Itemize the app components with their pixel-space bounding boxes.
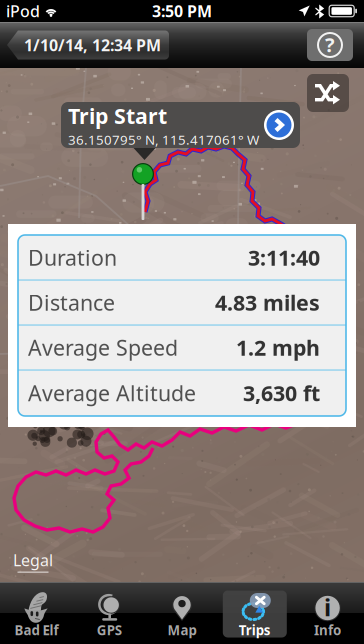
staticText: Trips	[239, 621, 271, 639]
staticText: 3:11:40	[248, 243, 320, 272]
staticText: Distance	[28, 288, 115, 317]
button[interactable]: Bad Elf	[0, 586, 73, 642]
staticText: ?	[325, 31, 335, 58]
button[interactable]: Trip Start	[61, 102, 300, 148]
button[interactable]: 1/10/14, 12:34 PM	[7, 30, 169, 59]
staticText: i	[324, 591, 331, 623]
staticText: Map	[167, 621, 196, 639]
staticText: 1.2 mph	[236, 333, 320, 362]
staticText: Average Speed	[28, 333, 178, 362]
button[interactable]: Map	[146, 586, 218, 642]
button[interactable]: Help	[307, 29, 353, 61]
staticText: 4.83 miles	[215, 288, 320, 317]
staticText: Legal	[13, 549, 53, 571]
button[interactable]: GPS	[73, 586, 146, 642]
staticText: 3,630 ft	[243, 379, 320, 407]
button[interactable]: Legal	[13, 549, 53, 573]
staticText: Duration	[28, 243, 117, 272]
staticText: Trip Start	[68, 101, 167, 130]
staticText: Bad Elf	[14, 621, 58, 639]
staticText: Average Altitude	[28, 379, 196, 407]
staticText: Info	[314, 621, 341, 639]
staticText: 3:50 PM	[152, 0, 212, 22]
button[interactable]: i	[291, 586, 364, 642]
staticText: 1/10/14, 12:34 PM	[24, 34, 161, 56]
staticText: iPod	[6, 0, 40, 22]
staticText: GPS	[97, 621, 122, 639]
button[interactable]: Shuffle	[307, 74, 349, 112]
button[interactable]: Trips	[218, 586, 291, 642]
staticText: 36.150795° N, 115.417061° W	[68, 131, 259, 148]
